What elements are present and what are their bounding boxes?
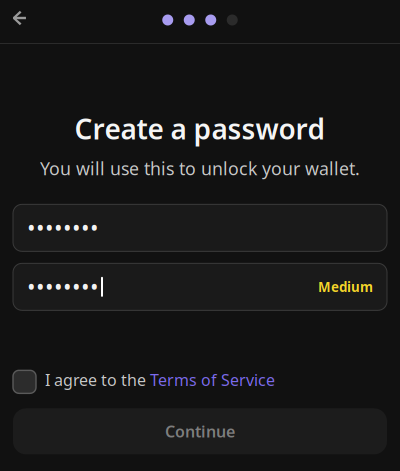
button[interactable]: Continue (13, 408, 387, 454)
button[interactable]: Back (0, 2, 38, 38)
staticText: Create a password (74, 110, 325, 147)
staticText: Medium (318, 278, 373, 296)
staticText: I agree to the (45, 369, 150, 390)
button[interactable]: Terms of Service (150, 369, 275, 390)
staticText: •••••••• (27, 213, 99, 243)
staticText: Terms of Service (150, 369, 275, 390)
button[interactable]: Password (13, 204, 387, 251)
staticText: You will use this to unlock your wallet. (40, 156, 360, 180)
button[interactable]: I agree to the Terms of Service (13, 370, 36, 393)
staticText: •••••••• (27, 272, 99, 302)
staticText: Continue (165, 421, 235, 442)
button[interactable]: Confirm password (13, 263, 387, 310)
